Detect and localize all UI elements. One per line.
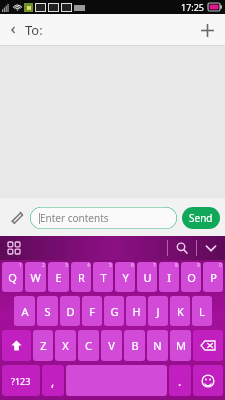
button[interactable]: Backspace — [193, 330, 223, 361]
staticText: K — [177, 304, 184, 319]
staticText: J — [156, 304, 160, 319]
staticText: Q — [8, 270, 17, 285]
button[interactable]: Y — [115, 262, 135, 292]
button[interactable]: X — [55, 330, 76, 361]
staticText: F — [89, 304, 95, 319]
button[interactable]: U — [137, 262, 157, 292]
button[interactable]: J — [148, 296, 168, 326]
staticText: . — [178, 373, 182, 389]
staticText: 2 — [42, 262, 45, 269]
button[interactable]: F — [82, 296, 102, 326]
button[interactable]: H — [126, 296, 146, 326]
button[interactable]: T — [93, 262, 113, 292]
button[interactable]: W — [25, 262, 46, 292]
staticText: N — [153, 338, 162, 353]
button[interactable]: D — [60, 296, 80, 326]
staticText: Send — [189, 211, 213, 225]
button[interactable]: Attach — [5, 206, 28, 229]
staticText: T — [100, 270, 107, 285]
staticText: E — [55, 270, 62, 285]
button[interactable]: Emoji — [193, 365, 223, 396]
staticText: M — [176, 338, 186, 353]
button[interactable]: Add recipient — [196, 19, 219, 42]
staticText: Enter contents — [40, 211, 109, 225]
staticText: A — [21, 304, 29, 319]
staticText: S — [44, 304, 51, 319]
staticText: P — [210, 270, 217, 285]
button[interactable]: N — [147, 330, 168, 361]
staticText: To: — [25, 21, 43, 39]
button[interactable]: K — [170, 296, 190, 326]
button[interactable]: S — [37, 296, 58, 326]
button[interactable]: Keyboard themes — [5, 239, 23, 257]
staticText: 8 — [175, 262, 178, 269]
staticText: 6 — [131, 262, 134, 269]
button[interactable]: L — [192, 296, 212, 326]
staticText: 1 — [19, 262, 22, 269]
staticText: O — [187, 270, 196, 285]
button[interactable]: Back — [6, 17, 45, 43]
staticText: 9 — [197, 262, 200, 269]
staticText: U — [143, 270, 152, 285]
staticText: W — [30, 270, 41, 285]
staticText: 17:25 — [181, 1, 205, 13]
staticText: X — [62, 338, 69, 353]
button[interactable]: Send — [182, 207, 220, 229]
button[interactable]: A — [14, 296, 35, 326]
staticText: C — [85, 338, 92, 353]
button[interactable]: ?123 — [2, 365, 40, 396]
staticText: 7 — [153, 262, 156, 269]
staticText: V — [108, 338, 115, 353]
button[interactable]: G — [104, 296, 124, 326]
staticText: L — [199, 304, 205, 319]
other: Back — [8, 25, 18, 35]
button[interactable]: Z — [33, 330, 53, 361]
staticText: Y — [122, 270, 129, 285]
button[interactable]: B — [124, 330, 145, 361]
button[interactable]: I — [159, 262, 179, 292]
button[interactable]: Comma — [42, 365, 64, 396]
staticText: D — [66, 304, 75, 319]
staticText: B — [131, 338, 139, 353]
button[interactable]: Shift — [2, 330, 31, 361]
staticText: G — [110, 304, 119, 319]
staticText: 5 — [109, 262, 112, 269]
button[interactable]: R — [71, 262, 91, 292]
button[interactable]: Period — [169, 365, 191, 396]
staticText: H — [132, 304, 141, 319]
button[interactable]: Q — [2, 262, 23, 292]
button[interactable]: C — [78, 330, 99, 361]
staticText: , — [51, 373, 55, 389]
button[interactable]: Enter contents — [30, 207, 177, 229]
button[interactable]: M — [170, 330, 191, 361]
button[interactable]: O — [181, 262, 201, 292]
button[interactable]: Search — [168, 239, 196, 257]
staticText: 4 — [87, 262, 90, 269]
button[interactable]: E — [48, 262, 69, 292]
button[interactable]: P — [203, 262, 223, 292]
button[interactable]: Hide keyboard — [197, 239, 225, 257]
button[interactable]: V — [101, 330, 122, 361]
staticText: 3 — [65, 262, 68, 269]
staticText: I — [167, 270, 171, 285]
staticText: R — [78, 270, 85, 285]
staticText: 0 — [219, 262, 222, 269]
staticText: ?123 — [11, 375, 31, 387]
staticText: Z — [40, 338, 47, 353]
